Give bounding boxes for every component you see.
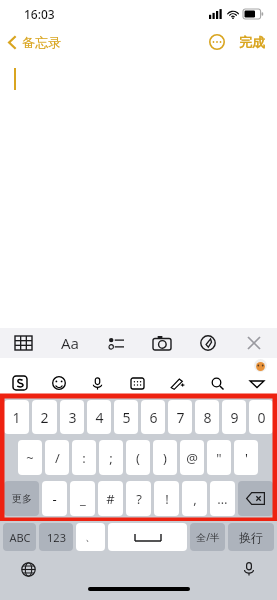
staticText: 6	[149, 408, 158, 427]
button[interactable]: 0	[249, 400, 273, 434]
button[interactable]: Checklist	[93, 328, 139, 358]
button[interactable]: Backspace	[238, 481, 273, 516]
button[interactable]: 9	[222, 400, 246, 434]
button[interactable]: More options	[206, 31, 228, 53]
staticText: ~	[26, 449, 34, 467]
staticText: :	[82, 449, 86, 467]
button[interactable]: ABC	[3, 523, 36, 551]
button[interactable]: Collapse	[237, 371, 277, 395]
button[interactable]: :	[72, 440, 96, 475]
staticText: #	[106, 490, 115, 508]
button[interactable]: Emoji	[39, 371, 78, 395]
button[interactable]: 6	[141, 400, 165, 434]
staticText: '	[245, 449, 248, 467]
button[interactable]: Space	[108, 523, 187, 551]
staticText: 备忘录	[22, 34, 61, 50]
button[interactable]: Voice input	[239, 559, 259, 579]
staticText: 8	[203, 408, 212, 427]
staticText: ;	[109, 449, 113, 467]
button[interactable]: ;	[99, 440, 123, 475]
button[interactable]: 5	[114, 400, 138, 434]
button[interactable]: 8	[195, 400, 219, 434]
button[interactable]: /	[45, 440, 69, 475]
button[interactable]: Markup	[185, 328, 231, 358]
button[interactable]: Keyboard	[117, 371, 157, 395]
staticText: 、	[85, 530, 96, 544]
button[interactable]: 2	[32, 400, 57, 434]
button[interactable]: 全/半	[190, 523, 225, 551]
staticText: 7	[176, 408, 185, 427]
button[interactable]: 更多	[4, 481, 39, 516]
staticText: 换行	[239, 530, 263, 545]
button[interactable]: Format text	[47, 328, 93, 358]
staticText: -	[52, 490, 57, 508]
button[interactable]: 完成	[237, 31, 267, 53]
button[interactable]: 1	[4, 400, 29, 434]
staticText: !	[165, 490, 169, 508]
staticText: 3	[68, 408, 77, 427]
button[interactable]: 3	[60, 400, 84, 434]
staticText: 更多	[12, 492, 32, 505]
staticText: 123	[47, 530, 66, 545]
staticText: 16:03	[24, 6, 55, 22]
staticText: 2	[40, 408, 49, 427]
button[interactable]: Table	[0, 328, 47, 358]
staticText: "	[216, 449, 222, 467]
button[interactable]: -	[42, 481, 67, 516]
button[interactable]: "	[207, 440, 231, 475]
button[interactable]: #	[98, 481, 123, 516]
button[interactable]: 4	[87, 400, 111, 434]
button[interactable]: )	[153, 440, 177, 475]
staticText: @	[186, 449, 198, 467]
staticText: 9	[230, 408, 239, 427]
staticText: ?	[136, 490, 142, 508]
button[interactable]: …	[210, 481, 235, 516]
button[interactable]: _	[70, 481, 95, 516]
button[interactable]: @	[180, 440, 204, 475]
button[interactable]: Camera	[139, 328, 185, 358]
button[interactable]: Voice input	[78, 371, 117, 395]
button[interactable]: 、	[76, 523, 105, 551]
button[interactable]: (	[126, 440, 150, 475]
button[interactable]: Handwriting	[157, 371, 197, 395]
staticText: ABC	[9, 530, 31, 545]
button[interactable]: ,	[182, 481, 207, 516]
staticText: …	[217, 490, 228, 508]
button[interactable]: !	[154, 481, 179, 516]
button[interactable]: '	[234, 440, 258, 475]
staticText: ,	[193, 490, 197, 508]
staticText: _	[80, 490, 86, 508]
staticText: /	[55, 449, 60, 467]
button[interactable]: Change keyboard	[18, 559, 39, 580]
button[interactable]: ~	[18, 440, 42, 475]
staticText: 完成	[239, 34, 265, 50]
staticText: 全/半	[196, 530, 220, 544]
button[interactable]: 换行	[228, 523, 274, 551]
staticText: (	[136, 449, 140, 467]
button[interactable]: Sogou	[0, 371, 39, 395]
staticText: 1	[12, 408, 21, 427]
button[interactable]: 7	[168, 400, 192, 434]
button[interactable]: Search	[197, 371, 237, 395]
button[interactable]: 123	[39, 523, 73, 551]
staticText: Aa	[61, 333, 80, 353]
staticText: 4	[95, 408, 104, 427]
button[interactable]: ?	[126, 481, 151, 516]
staticText: )	[163, 449, 167, 467]
button[interactable]: 备忘录	[0, 32, 69, 52]
staticText: 0	[257, 408, 266, 427]
staticText: 5	[122, 408, 131, 427]
button[interactable]: Close	[231, 328, 277, 358]
